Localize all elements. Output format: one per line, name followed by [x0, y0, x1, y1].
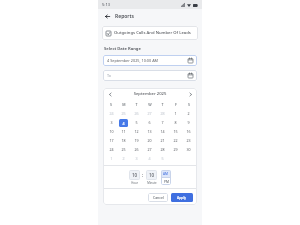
button[interactable]: 1: [105, 154, 117, 163]
button[interactable]: 14: [156, 127, 169, 136]
button[interactable]: 25: [117, 145, 130, 154]
button[interactable]: 8: [169, 118, 182, 127]
button[interactable]: 4: [143, 154, 156, 163]
button[interactable]: 29: [169, 145, 182, 154]
button[interactable]: PM: [161, 178, 171, 185]
staticText: 16: [186, 129, 191, 134]
button[interactable]: 17: [105, 136, 117, 145]
staticText: 1: [110, 156, 113, 161]
button[interactable]: 30: [182, 145, 195, 154]
button[interactable]: 25: [117, 109, 130, 118]
staticText: 12: [134, 129, 139, 134]
staticText: PM: [164, 180, 169, 184]
staticText: S: [110, 102, 112, 107]
staticText: 10: [109, 129, 114, 134]
staticText: 2: [187, 111, 190, 116]
staticText: 1: [174, 111, 177, 116]
button[interactable]: To: [103, 70, 197, 81]
button[interactable]: Back: [103, 12, 112, 21]
staticText: Reports: [115, 13, 135, 20]
button[interactable]: 3: [105, 118, 117, 127]
staticText: 13: [147, 129, 152, 134]
staticText: AM: [163, 172, 169, 176]
staticText: 27: [147, 111, 152, 116]
staticText: 24: [109, 147, 114, 152]
staticText: 24: [109, 111, 114, 116]
button[interactable]: 20: [143, 136, 156, 145]
button[interactable]: 10: [146, 170, 157, 180]
staticText: 18: [121, 138, 126, 143]
button[interactable]: Cancel: [148, 193, 168, 202]
staticText: Minute: [147, 181, 157, 185]
staticText: 5: [135, 120, 138, 125]
button[interactable]: 2: [182, 109, 195, 118]
button[interactable]: 27: [143, 109, 156, 118]
button[interactable]: 6: [143, 118, 156, 127]
staticText: M: [122, 102, 126, 107]
button[interactable]: 3: [130, 154, 143, 163]
button[interactable]: 5: [156, 154, 169, 163]
button[interactable]: 10: [129, 170, 140, 180]
staticText: 19: [134, 138, 139, 143]
staticText: Outgoings Calls And Number Of Leads: [114, 30, 191, 36]
staticText: Select Date Range: [104, 46, 141, 52]
button[interactable]: 13: [143, 127, 156, 136]
staticText: 3: [135, 156, 138, 161]
button[interactable]: 28: [156, 145, 169, 154]
staticText: 30: [186, 147, 191, 152]
staticText: W: [148, 102, 152, 107]
staticText: Hour: [131, 181, 138, 185]
staticText: 10: [132, 172, 138, 178]
staticText: 17: [109, 138, 114, 143]
button[interactable]: 4 September 2025, 10:00 AM: [103, 55, 197, 66]
staticText: 21: [160, 138, 165, 143]
button[interactable]: Apply: [171, 193, 193, 202]
staticText: 4 September 2025, 10:00 AM: [107, 58, 188, 63]
staticText: 25: [121, 111, 126, 116]
button[interactable]: 12: [130, 127, 143, 136]
staticText: 4: [148, 156, 151, 161]
button[interactable]: Outgoings Calls And Number Of Leads: [102, 26, 198, 40]
button[interactable]: Next month: [186, 90, 194, 98]
staticText: 7: [161, 120, 164, 125]
staticText: T: [135, 102, 138, 107]
staticText: 3: [110, 120, 113, 125]
staticText: 6: [148, 120, 151, 125]
staticText: 14: [160, 129, 165, 134]
staticText: 22: [173, 138, 178, 143]
button[interactable]: 10: [105, 127, 117, 136]
button[interactable]: 9: [182, 118, 195, 127]
staticText: 10: [149, 172, 155, 178]
button[interactable]: 22: [169, 136, 182, 145]
button[interactable]: 27: [143, 145, 156, 154]
button[interactable]: 24: [105, 145, 117, 154]
button[interactable]: 21: [156, 136, 169, 145]
staticText: F: [175, 102, 177, 107]
button[interactable]: 15: [169, 127, 182, 136]
button[interactable]: 16: [182, 127, 195, 136]
staticText: September 2025: [114, 91, 186, 97]
button[interactable]: 5: [130, 118, 143, 127]
staticText: 29: [173, 147, 178, 152]
button[interactable]: 4: [119, 119, 128, 127]
button[interactable]: 2: [117, 154, 130, 163]
button[interactable]: 19: [130, 136, 143, 145]
button[interactable]: 23: [182, 136, 195, 145]
staticText: 26: [134, 111, 139, 116]
button[interactable]: AM: [161, 170, 171, 177]
button[interactable]: 28: [156, 109, 169, 118]
button[interactable]: 24: [105, 109, 117, 118]
button[interactable]: Previous month: [106, 90, 114, 98]
button[interactable]: 7: [156, 118, 169, 127]
button[interactable]: 11: [117, 127, 130, 136]
staticText: 28: [160, 111, 165, 116]
staticText: 15: [173, 129, 178, 134]
button[interactable]: 26: [130, 109, 143, 118]
button[interactable]: 26: [130, 145, 143, 154]
staticText: 27: [147, 147, 152, 152]
button[interactable]: 18: [117, 136, 130, 145]
staticText: 28: [160, 147, 165, 152]
button[interactable]: 1: [169, 109, 182, 118]
